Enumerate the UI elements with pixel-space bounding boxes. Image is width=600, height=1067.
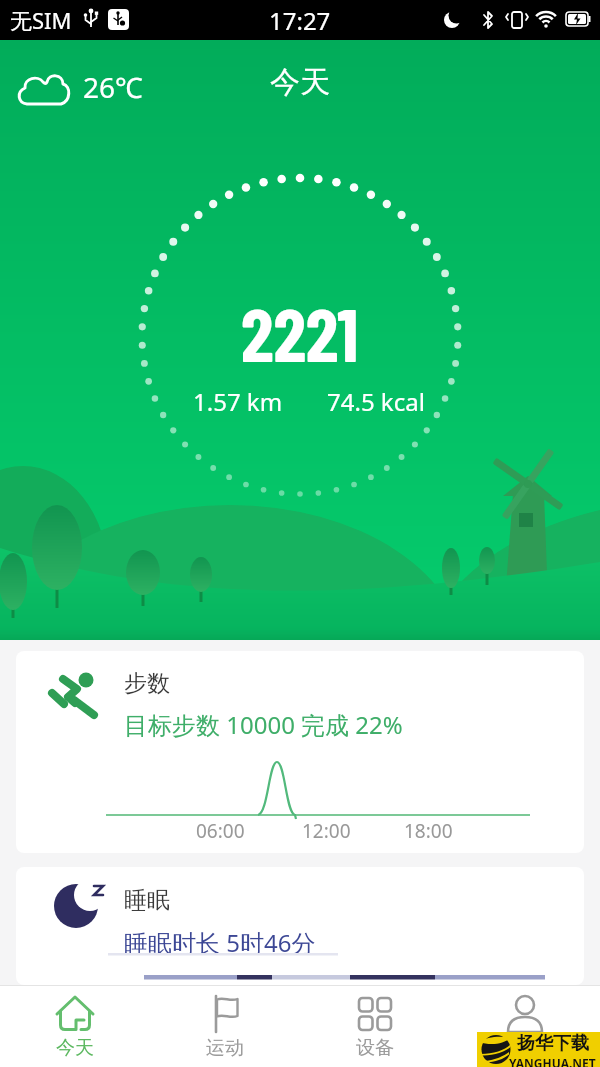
staticText: 74.5 kcal — [327, 385, 425, 418]
staticText: 18:00 — [404, 818, 453, 844]
staticText: 睡眠时长 5时46分 — [124, 926, 316, 959]
staticText: 目标步数 10000 完成 22% — [124, 708, 403, 741]
staticText: 12:00 — [302, 818, 351, 844]
button[interactable]: 设备 — [300, 986, 450, 1067]
staticText: 步数 — [124, 669, 170, 698]
staticText: 睡眠 — [124, 886, 170, 915]
staticText: 26℃ — [83, 68, 143, 106]
staticText: 2221 — [241, 288, 359, 377]
button[interactable]: 睡眠 — [16, 867, 584, 985]
staticText: YANGHUA.NET — [509, 1055, 596, 1067]
staticText: 17:27 — [269, 4, 331, 37]
staticText: 今天 — [270, 63, 330, 101]
staticText: 运动 — [206, 1036, 244, 1060]
staticText: 06:00 — [196, 818, 245, 844]
button[interactable]: 运动 — [150, 986, 300, 1067]
button[interactable]: 今天 — [0, 986, 150, 1067]
staticText: 无SIM — [10, 5, 72, 35]
staticText: 设备 — [356, 1036, 394, 1060]
staticText: 扬华下载 — [517, 1032, 589, 1055]
staticText: 1.57 km — [193, 385, 283, 418]
staticText: 今天 — [56, 1036, 94, 1060]
button[interactable]: 步数 — [16, 651, 584, 853]
button[interactable] — [450, 986, 600, 1067]
